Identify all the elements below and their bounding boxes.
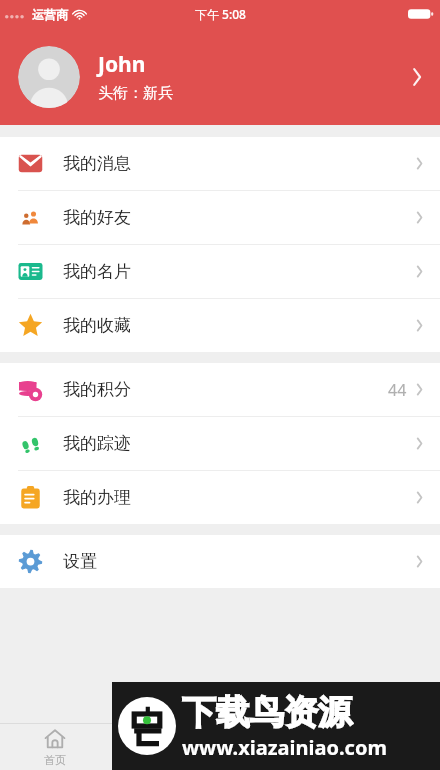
- button[interactable]: 我的收藏: [0, 299, 440, 352]
- button[interactable]: 我的办理: [0, 471, 440, 524]
- staticText: 设置: [63, 551, 97, 572]
- button[interactable]: 设置: [0, 535, 440, 588]
- staticText: www.xiazainiao.com: [182, 734, 387, 761]
- button[interactable]: 我的消息: [0, 137, 440, 190]
- staticText: John: [98, 50, 146, 79]
- staticText: 我的踪迹: [63, 433, 131, 454]
- staticText: 首页: [44, 753, 66, 767]
- button[interactable]: 同学: [220, 724, 330, 770]
- staticText: 头衔：新兵: [98, 84, 173, 103]
- button[interactable]: John: [0, 28, 440, 125]
- staticText: 我的消息: [63, 153, 131, 174]
- other: Profile details: [410, 64, 424, 90]
- button[interactable]: 首页: [0, 724, 110, 770]
- button[interactable]: 校园: [110, 724, 220, 770]
- staticText: 下午 5:08: [195, 6, 246, 22]
- staticText: 我的积分: [63, 379, 131, 400]
- button[interactable]: 我的好友: [0, 191, 440, 244]
- button[interactable]: 我的踪迹: [0, 417, 440, 470]
- staticText: 我的办理: [63, 487, 131, 508]
- staticText: 我的收藏: [63, 315, 131, 336]
- staticText: 校园: [154, 753, 176, 767]
- button[interactable]: 我的名片: [0, 245, 440, 298]
- button[interactable]: 我: [330, 724, 440, 770]
- staticText: 运营商: [32, 7, 68, 22]
- staticText: 我: [380, 753, 391, 767]
- staticText: 44: [388, 379, 407, 401]
- staticText: 同学: [264, 753, 286, 767]
- button[interactable]: 我的积分: [0, 363, 440, 416]
- staticText: 我的名片: [63, 261, 131, 282]
- staticText: 下载鸟资源: [182, 691, 352, 734]
- staticText: 我的好友: [63, 207, 131, 228]
